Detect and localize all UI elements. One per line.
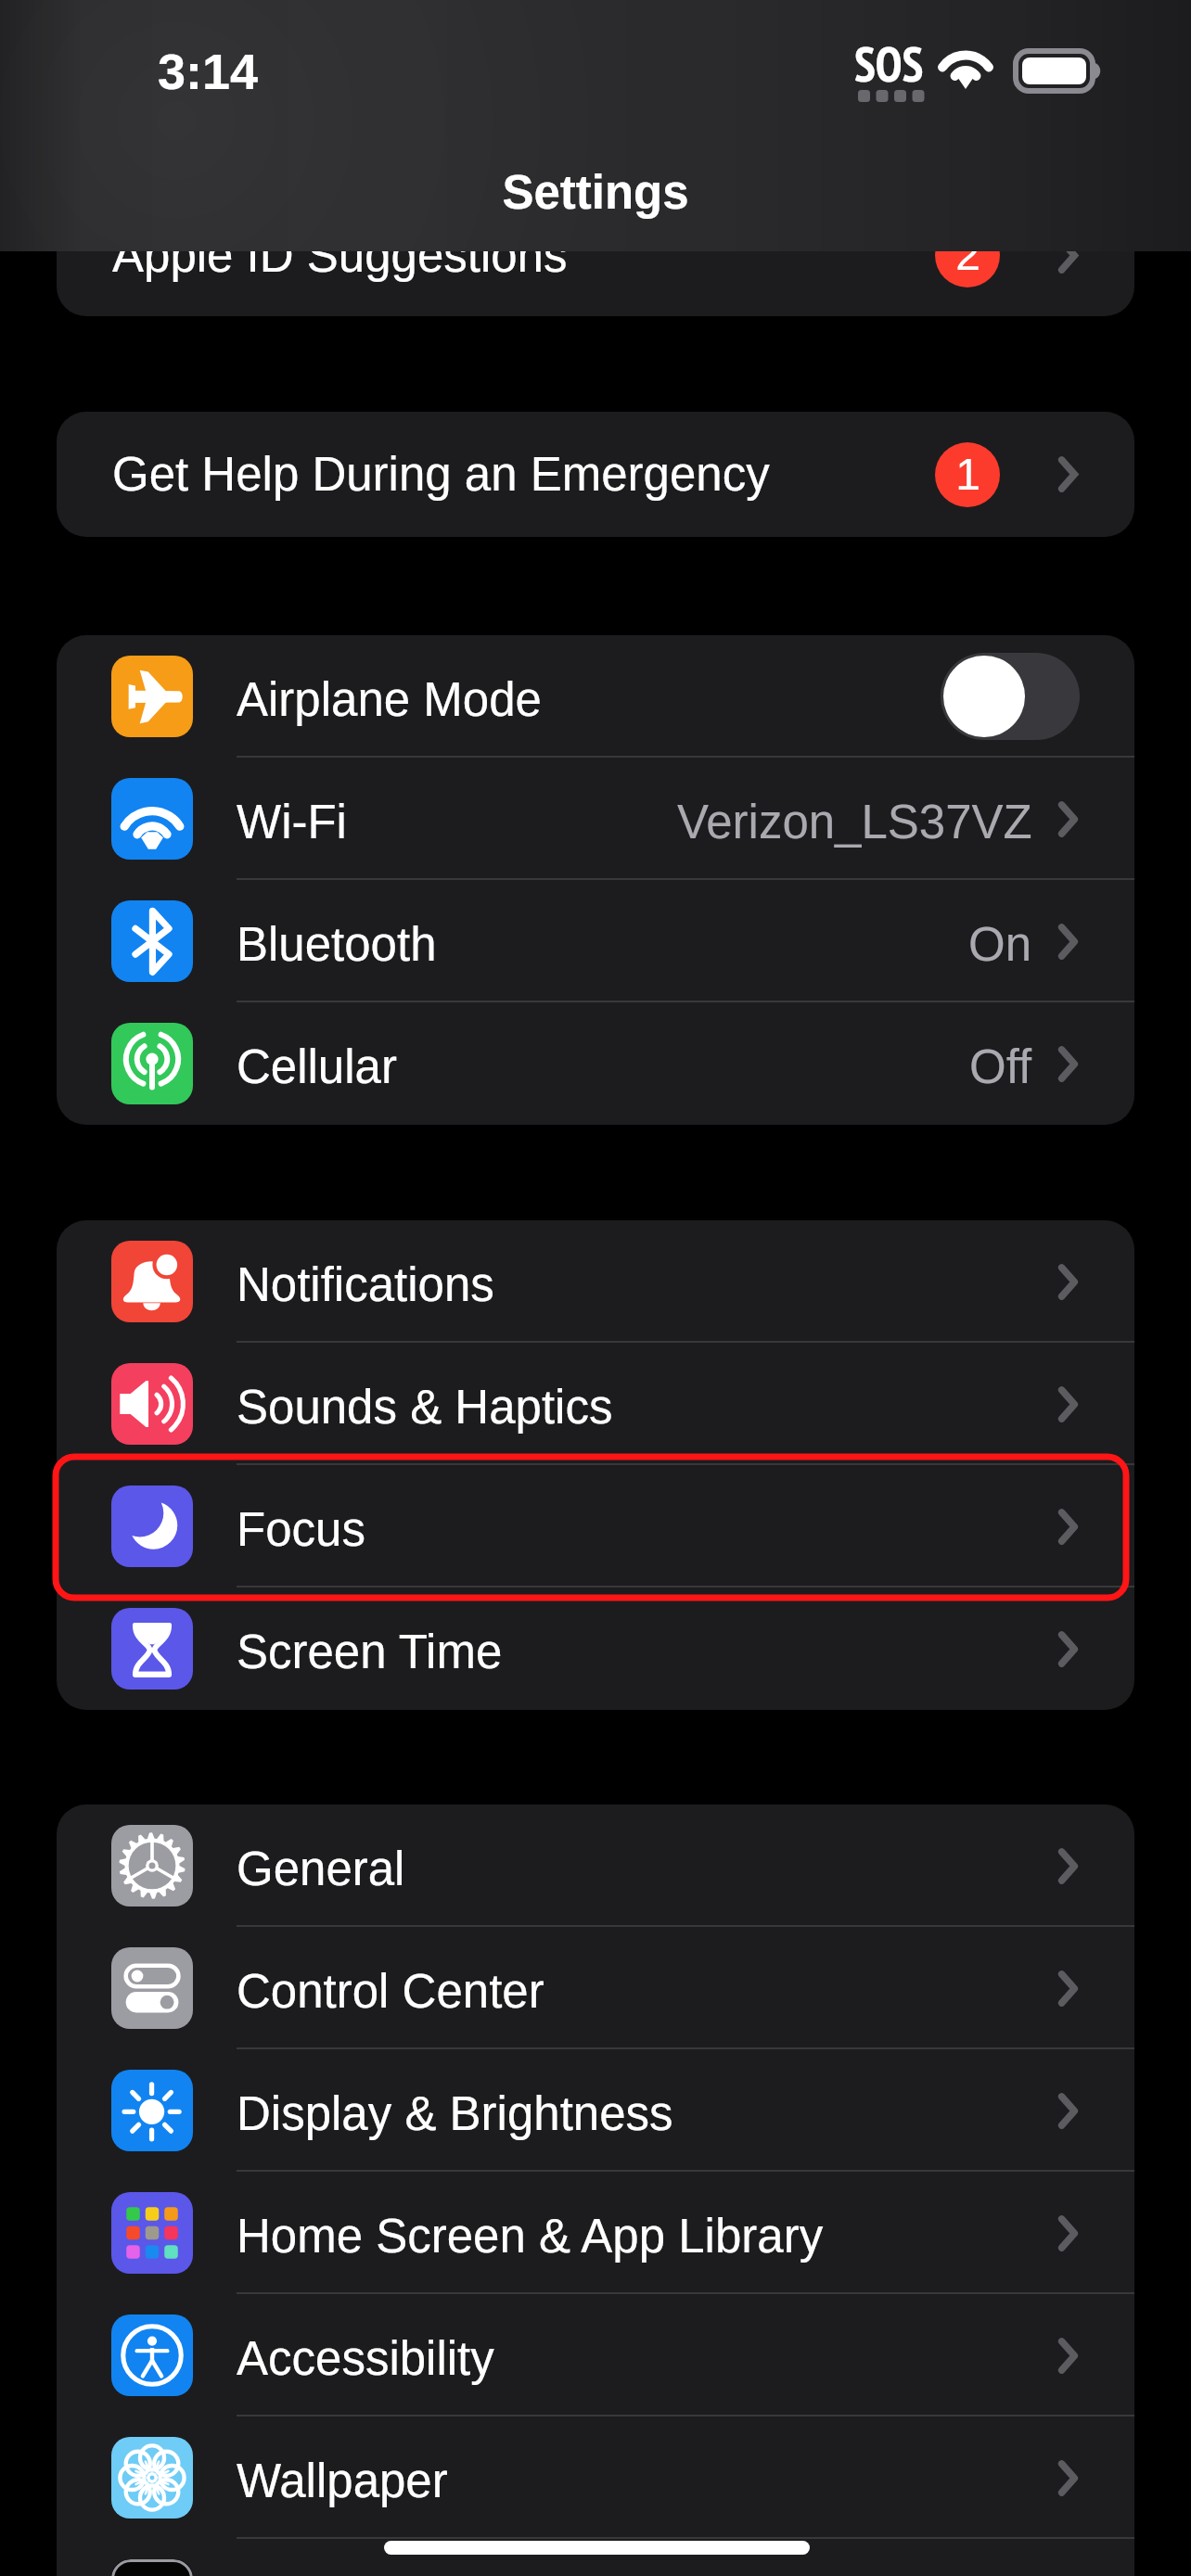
button[interactable]: Airplane Mode off: [941, 653, 1080, 740]
button[interactable]: General: [57, 1804, 1134, 1927]
staticText: 2: [955, 230, 980, 280]
staticText: Focus: [237, 1503, 365, 1556]
staticText: SOS: [854, 32, 924, 95]
staticText: 1: [955, 450, 980, 500]
staticText: Verizon_LS37VZ: [677, 796, 1032, 848]
staticText: Notifications: [237, 1258, 494, 1311]
staticText: Home Screen & App Library: [237, 2210, 824, 2263]
button[interactable]: Get Help During an Emergency: [57, 412, 1134, 537]
button[interactable]: Accessibility: [57, 2294, 1134, 2417]
staticText: General: [237, 1843, 405, 1895]
staticText: Wallpaper: [237, 2455, 448, 2507]
button[interactable]: Notifications: [57, 1220, 1134, 1343]
button[interactable]: Bluetooth: [57, 880, 1134, 1002]
button[interactable]: Sounds & Haptics: [57, 1343, 1134, 1465]
button[interactable]: Wi-Fi: [57, 758, 1134, 880]
staticText: Get Help During an Emergency: [112, 448, 770, 501]
staticText: Bluetooth: [237, 918, 437, 971]
button[interactable]: Airplane Mode: [57, 635, 1134, 758]
staticText: Apple ID Suggestions: [112, 229, 568, 282]
staticText: Settings: [0, 166, 1191, 219]
staticText: Wi-Fi: [237, 796, 347, 848]
staticText: Sounds & Haptics: [237, 1381, 613, 1434]
button[interactable]: Cellular: [57, 1002, 1134, 1125]
button[interactable]: Screen Time: [57, 1588, 1134, 1710]
staticText: On: [968, 918, 1032, 971]
staticText: Cellular: [237, 1040, 397, 1093]
button[interactable]: Focus: [57, 1465, 1134, 1588]
button[interactable]: Control Center: [57, 1927, 1134, 2049]
button[interactable]: Wallpaper: [57, 2417, 1134, 2539]
staticText: Airplane Mode: [237, 673, 542, 726]
staticText: Off: [969, 1040, 1032, 1093]
staticText: Control Center: [237, 1965, 544, 2018]
button[interactable]: Apple ID Suggestions: [57, 194, 1134, 316]
staticText: Display & Brightness: [237, 2087, 673, 2140]
button[interactable]: Display & Brightness: [57, 2049, 1134, 2172]
staticText: Screen Time: [237, 1626, 503, 1678]
staticText: Accessibility: [237, 2332, 494, 2385]
button[interactable]: Siri & Search: [57, 2539, 1134, 2576]
staticText: 3:14: [158, 44, 259, 99]
button[interactable]: Home Screen & App Library: [57, 2172, 1134, 2294]
